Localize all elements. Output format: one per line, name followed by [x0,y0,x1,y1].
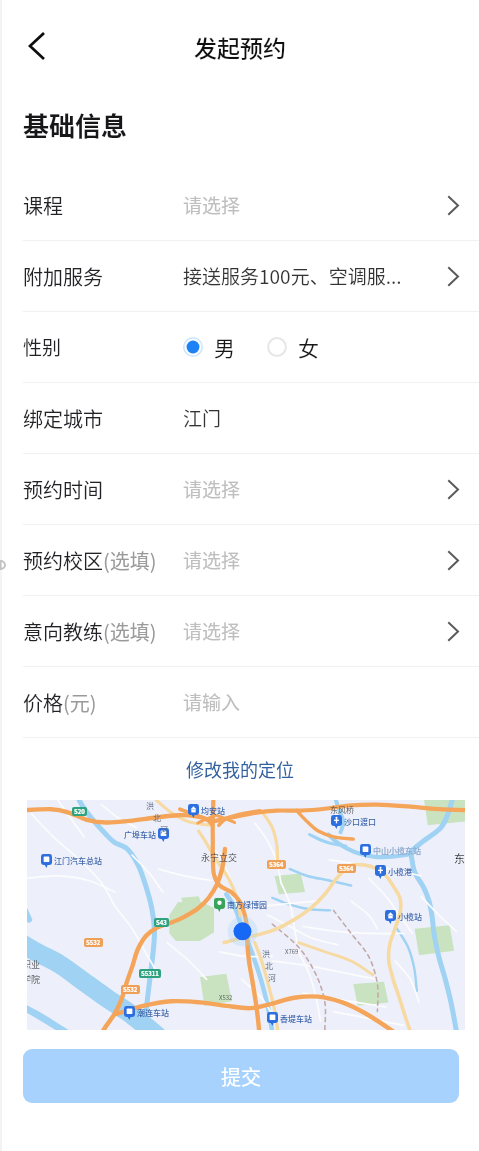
staticText: 男 [214,332,235,362]
staticText: S532 [123,985,138,994]
staticText: 请选择 [183,546,241,574]
staticText: 江门 [183,404,222,432]
staticText: 修改我的定位 [186,756,294,782]
button[interactable]: 女 [267,332,319,362]
button[interactable]: 预约时间 [0,454,479,525]
staticText: 预约时间 [23,475,103,504]
staticText: S364 [339,864,354,873]
button[interactable]: 意向教练(选填) [0,596,479,667]
staticText: 职业 [27,958,41,971]
staticText: 东风桥 [330,804,354,816]
button[interactable]: 预约校区(选填) [0,525,479,596]
staticText: 沙口渡口 [344,816,376,828]
staticText: 小榄港 [388,866,412,878]
staticText: S43 [156,918,167,927]
staticText: 南方绿博园 [227,899,267,911]
staticText: 提交 [221,1062,261,1091]
staticText: 请选择 [183,191,241,219]
staticText: 请输入 [183,688,241,716]
button[interactable]: Back [16,26,56,66]
staticText: 香堤车站 [280,1013,312,1025]
button[interactable]: 价格(元) [0,667,479,738]
staticText: 意向教练(选填) [23,617,157,646]
button[interactable]: Map [27,800,465,1030]
staticText: 接送服务100元、空调服... [183,262,402,290]
staticText: 绑定城市 [23,404,103,433]
staticText: 课程 [23,191,63,220]
staticText: X532 [219,993,233,1002]
staticText: 北 [153,812,161,824]
staticText: 洪 [146,800,154,812]
staticText: X769 [285,947,299,956]
staticText: 河 [160,824,168,836]
staticText: 发起预约 [194,30,286,63]
staticText: 小榄站 [398,911,422,923]
button[interactable]: 修改我的定位 [174,748,306,790]
staticText: 江门汽车总站 [54,855,102,867]
staticText: 性别 [23,333,62,361]
staticText: 基础信息 [23,106,128,144]
staticText: 潮连车站 [137,1007,169,1019]
staticText: 永宁立交 [201,851,238,864]
staticText: S364 [269,860,284,869]
staticText: 洪 [262,948,270,960]
staticText: 北 [265,960,273,972]
staticText: 学院 [27,973,41,986]
staticText: S532 [86,938,101,947]
staticText: 广埠车站 [124,829,156,841]
staticText: 河 [268,972,276,984]
staticText: 中山小榄东站 [373,845,421,857]
staticText: 价格(元) [23,688,97,717]
staticText: 预约校区(选填) [23,546,157,575]
staticText: 东 [454,850,465,866]
staticText: S5311 [141,969,159,978]
staticText: 请选择 [183,617,241,645]
staticText: 附加服务 [23,262,103,291]
button[interactable]: 绑定城市 [0,383,479,454]
button[interactable]: 提交 [23,1049,459,1103]
button[interactable]: 课程 [0,170,479,241]
button[interactable]: 附加服务 [0,241,479,312]
button[interactable]: 男 [183,332,235,362]
staticText: 均安站 [201,805,225,817]
staticText: S20 [74,807,85,816]
staticText: 请选择 [183,475,241,503]
staticText: 女 [298,332,319,362]
